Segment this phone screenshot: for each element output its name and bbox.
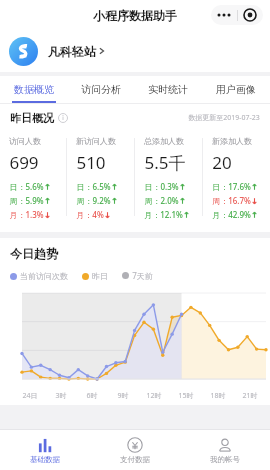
button[interactable]: 访问分析 bbox=[67, 76, 134, 103]
staticText: 实时统计 bbox=[148, 83, 188, 96]
staticText: 数据更新至2019-07-23 bbox=[188, 113, 260, 123]
button[interactable]: 7天前 bbox=[122, 270, 153, 281]
staticText: 昨日 bbox=[92, 271, 108, 281]
staticText: 昨日概况 bbox=[10, 111, 54, 125]
staticText: 周：9.2% bbox=[76, 195, 111, 206]
staticText: 用户画像 bbox=[216, 83, 256, 96]
staticText: 3时 bbox=[55, 391, 67, 401]
staticText: 当前访问次数 bbox=[20, 271, 68, 281]
staticText: 日：6.5% bbox=[76, 181, 111, 192]
button[interactable]: 新添加人数 bbox=[203, 132, 270, 232]
staticText: 月：12.1% bbox=[144, 209, 183, 220]
button[interactable]: 总添加人数 bbox=[135, 132, 202, 232]
staticText: 月：4% bbox=[76, 209, 104, 220]
staticText: 周：16.7% bbox=[212, 195, 251, 206]
staticText: 24日 bbox=[22, 391, 38, 401]
button[interactable]: 访问人数 bbox=[0, 132, 66, 232]
staticText: 20 bbox=[212, 151, 232, 174]
button[interactable]: 我的帐号 bbox=[180, 430, 270, 470]
staticText: 510 bbox=[76, 151, 106, 174]
button[interactable]: More options and close bbox=[211, 5, 263, 25]
button[interactable]: 新访问人数 bbox=[67, 132, 134, 232]
button[interactable]: 基础数据 bbox=[0, 430, 90, 470]
staticText: 总添加人数 bbox=[144, 136, 184, 146]
staticText: 数据概览 bbox=[14, 83, 54, 96]
staticText: 小程序数据助手 bbox=[93, 8, 177, 23]
staticText: 新访问人数 bbox=[76, 136, 116, 146]
staticText: 凡科轻站 bbox=[48, 44, 96, 59]
staticText: 今日趋势 bbox=[10, 246, 58, 261]
staticText: 699 bbox=[9, 151, 39, 174]
staticText: 月：1.3% bbox=[9, 209, 44, 220]
button[interactable]: 数据概览 bbox=[0, 76, 67, 103]
staticText: 5.5千 bbox=[144, 151, 186, 174]
button[interactable]: 支付数据 bbox=[90, 430, 180, 470]
staticText: 我的帐号 bbox=[210, 455, 240, 464]
staticText: 18时 bbox=[210, 391, 226, 401]
staticText: 月：42.9% bbox=[212, 209, 251, 220]
button[interactable]: Info bbox=[58, 113, 68, 123]
staticText: 访问分析 bbox=[81, 83, 121, 96]
staticText: 日：5.6% bbox=[9, 181, 44, 192]
staticText: 21时 bbox=[242, 391, 258, 401]
staticText: 周：5.9% bbox=[9, 195, 44, 206]
button[interactable]: 凡科轻站 bbox=[0, 30, 270, 72]
staticText: 访问人数 bbox=[9, 136, 41, 146]
staticText: 7天前 bbox=[132, 270, 153, 281]
staticText: 基础数据 bbox=[30, 455, 60, 464]
staticText: 日：17.6% bbox=[212, 181, 251, 192]
staticText: 9时 bbox=[117, 391, 129, 401]
staticText: 6时 bbox=[86, 391, 98, 401]
staticText: 15时 bbox=[178, 391, 194, 401]
staticText: 周：2.0% bbox=[144, 195, 179, 206]
staticText: 日：0.3% bbox=[144, 181, 179, 192]
button[interactable]: 当前访问次数 bbox=[10, 271, 68, 281]
button[interactable]: 昨日 bbox=[82, 271, 108, 281]
staticText: 支付数据 bbox=[120, 455, 150, 464]
staticText: 新添加人数 bbox=[212, 136, 252, 146]
button[interactable]: 用户画像 bbox=[202, 76, 270, 103]
button[interactable]: 实时统计 bbox=[134, 76, 202, 103]
staticText: 12时 bbox=[146, 391, 162, 401]
